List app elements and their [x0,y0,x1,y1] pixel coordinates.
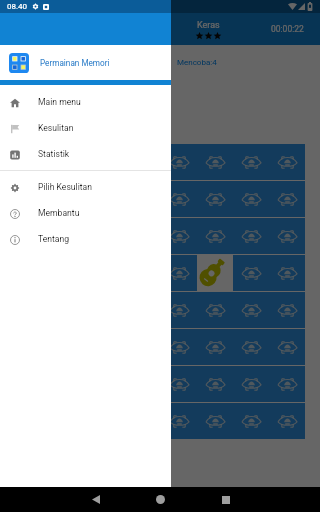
staticText: Permainan Memori [40,58,110,68]
button[interactable]: Card [17,144,53,180]
button[interactable]: Statistik [0,141,171,167]
button[interactable]: Card [233,292,269,328]
button[interactable]: Home [142,487,178,512]
staticText: 00:00:22 [271,24,304,34]
button[interactable]: Card [197,181,233,217]
button[interactable]: Card [269,292,305,328]
button[interactable]: Card [197,366,233,402]
button[interactable]: Card [233,218,269,254]
button[interactable]: Card [161,144,197,180]
button[interactable]: Card [161,181,197,217]
button[interactable]: Card [161,218,197,254]
button[interactable]: Card [197,292,233,328]
button[interactable]: Pilih Kesulitan [0,174,171,200]
button[interactable]: Membantu [0,200,171,226]
button[interactable]: Card [269,144,305,180]
staticText: 08.40 [7,2,28,11]
button[interactable]: Permainan Memori [0,45,171,80]
button[interactable]: Tentang [0,226,171,252]
staticText: Keras [197,20,220,31]
staticText: Kesulitan [38,123,74,133]
button[interactable]: Card [17,181,53,217]
staticText: Mencoba:4 [177,58,217,67]
button[interactable]: Card [269,329,305,365]
button[interactable]: Card [197,218,233,254]
button[interactable]: Card [17,218,53,254]
button[interactable]: Card [161,403,197,439]
button[interactable]: Card [53,181,89,217]
button[interactable]: Card [197,144,233,180]
button[interactable]: Card [269,366,305,402]
button[interactable]: Card [233,255,269,291]
staticText: Membantu [38,208,80,218]
button[interactable]: Card [233,181,269,217]
button[interactable]: Card [269,218,305,254]
staticText: Statistik [38,149,70,159]
button[interactable]: Card [161,255,197,291]
button[interactable]: Card [197,403,233,439]
button[interactable]: Back [78,487,114,512]
button[interactable]: Card [269,403,305,439]
staticText: Pilih Kesulitan [38,182,92,192]
button[interactable]: Card [233,403,269,439]
button[interactable]: Card [269,181,305,217]
button[interactable]: Main menu [0,89,171,115]
button[interactable]: Card [89,144,125,180]
button[interactable]: Card [125,144,161,180]
button[interactable]: Recent apps [208,487,244,512]
button[interactable]: Card [233,366,269,402]
button[interactable]: Card [53,144,89,180]
button[interactable]: Card [233,144,269,180]
button[interactable]: Card [161,292,197,328]
button[interactable]: Card [161,366,197,402]
staticText: Main menu [38,97,81,107]
staticText: Tentang [38,234,70,244]
button[interactable]: Card [161,329,197,365]
button[interactable]: Card [197,255,233,291]
button[interactable]: Kesulitan [0,115,171,141]
button[interactable]: Card [197,329,233,365]
staticText: 08.40 [7,2,28,11]
button[interactable]: Card [53,218,89,254]
button[interactable]: Card [233,329,269,365]
button[interactable]: Card [269,255,305,291]
button[interactable]: Card [89,181,125,217]
